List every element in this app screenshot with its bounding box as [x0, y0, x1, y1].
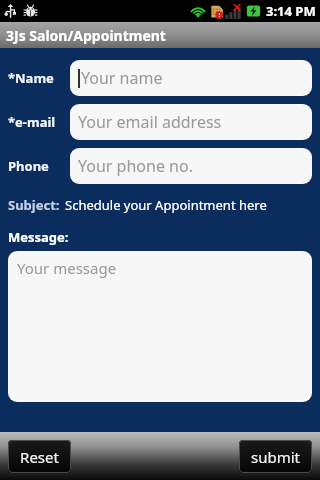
staticText: *Name — [8, 69, 54, 87]
staticText: Subject: — [8, 196, 60, 214]
staticText: Your message — [17, 258, 117, 278]
staticText: Your email address — [78, 111, 222, 133]
staticText: Your name — [81, 67, 163, 89]
button[interactable]: Your email address — [70, 104, 312, 140]
staticText: Reset — [20, 447, 59, 467]
staticText: *e-mail — [8, 113, 56, 131]
staticText: Your phone no. — [78, 155, 193, 177]
staticText: Schedule your Appointment here — [65, 196, 267, 214]
button[interactable]: Your name — [70, 60, 312, 96]
button[interactable]: submit — [239, 440, 312, 473]
staticText: submit — [251, 447, 300, 467]
button[interactable]: Reset — [8, 440, 71, 473]
staticText: Message: — [8, 228, 69, 246]
staticText: 3:14 PM — [266, 2, 316, 20]
button[interactable]: Your message — [8, 251, 312, 402]
staticText: Phone — [8, 157, 49, 175]
button[interactable]: Your phone no. — [70, 148, 312, 184]
staticText: 3Js Salon/Appointment — [6, 26, 166, 45]
